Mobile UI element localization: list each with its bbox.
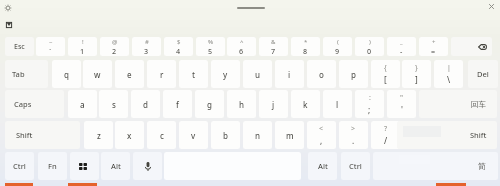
staticText: - [400,46,403,56]
staticText: 2 [112,46,117,56]
other: Windows [79,163,87,170]
staticText: Esc [14,42,25,52]
button[interactable]: e [115,60,144,88]
staticText: y [223,69,228,80]
staticText: , [320,135,323,146]
button[interactable]: g [195,90,224,118]
button[interactable]: q [52,60,81,88]
button[interactable]: @ [100,37,129,56]
button[interactable]: m [275,121,304,149]
button[interactable]: } [402,60,431,88]
button[interactable]: { [371,60,400,88]
staticText: _ [400,38,403,46]
button[interactable]: l [323,90,352,118]
button[interactable]: Del [468,60,498,88]
button[interactable]: | [434,60,463,88]
button[interactable]: ~ [36,37,65,56]
button[interactable]: Settings [1,1,14,14]
staticText: ] [415,74,418,85]
button[interactable]: v [179,121,208,149]
button[interactable]: o [307,60,336,88]
button[interactable]: Alt [308,152,337,180]
button[interactable]: t [179,60,208,88]
other: Backspace [478,44,487,50]
button[interactable]: ) [355,37,384,56]
button[interactable]: ^ [227,37,256,56]
staticText: ` [49,46,52,56]
button[interactable]: Alt [101,152,130,180]
button[interactable]: Close [485,0,498,13]
button[interactable]: + [419,37,448,56]
staticText: 0 [367,46,372,56]
button[interactable]: % [196,37,225,56]
button[interactable]: Shift [397,121,497,149]
staticText: & [271,38,276,46]
button[interactable]: Ctrl [5,152,34,180]
button[interactable]: i [275,60,304,88]
button[interactable]: s [99,90,128,118]
button[interactable]: d [131,90,160,118]
staticText: $ [177,38,181,46]
button[interactable]: & [259,37,288,56]
other: Voice input [145,162,151,171]
staticText: = [431,46,436,56]
button[interactable]: 回车 [419,90,497,118]
button[interactable]: x [115,121,144,149]
button[interactable]: $ [164,37,193,56]
staticText: " [400,93,404,103]
button[interactable]: Caps [5,90,64,118]
button[interactable]: f [163,90,192,118]
button[interactable]: Fn [38,152,67,180]
button[interactable]: h [227,90,256,118]
button[interactable]: ! [68,37,97,56]
button[interactable]: _ [387,37,416,56]
button[interactable]: c [147,121,176,149]
button[interactable]: > [339,121,368,149]
button[interactable]: r [147,60,176,88]
button[interactable]: Voice input [133,152,162,180]
staticText: + [432,38,436,46]
button[interactable]: Backspace [451,37,492,56]
button[interactable]: Tab [5,60,48,88]
staticText: 9 [335,46,340,56]
staticText: ~ [49,38,53,46]
button[interactable]: ? [371,121,400,149]
button[interactable]: # [132,37,161,56]
button[interactable]: " [387,90,416,118]
button[interactable]: a [68,90,97,118]
button[interactable]: : [355,90,384,118]
staticText: i [288,69,291,80]
button[interactable]: < [307,121,336,149]
button[interactable]: ( [323,37,352,56]
button[interactable]: Hide keyboard [2,19,15,32]
staticText: 8 [303,46,308,56]
button[interactable]: Esc [5,37,34,56]
staticText: > [351,124,356,134]
staticText: Del [477,69,489,79]
button[interactable]: z [84,121,113,149]
staticText: \ [447,74,451,85]
button[interactable]: w [83,60,112,88]
staticText: f [176,99,179,110]
button[interactable]: Windows [70,152,99,180]
staticText: Ctrl [13,161,26,171]
button[interactable]: k [291,90,320,118]
button[interactable]: n [243,121,272,149]
button[interactable]: y [211,60,240,88]
button[interactable]: * [291,37,320,56]
staticText: p [351,69,356,80]
staticText: ( [337,38,339,46]
button[interactable]: j [259,90,288,118]
staticText: ! [82,38,84,46]
staticText: v [191,130,196,141]
staticText: x [127,130,132,141]
button[interactable]: u [243,60,272,88]
button[interactable]: p [339,60,368,88]
button[interactable]: Ctrl [341,152,370,180]
staticText: Ctrl [349,161,362,171]
button[interactable]: Shift [5,121,80,149]
staticText: s [112,99,116,110]
button[interactable]: b [211,121,240,149]
button[interactable]: 简 [373,152,498,180]
